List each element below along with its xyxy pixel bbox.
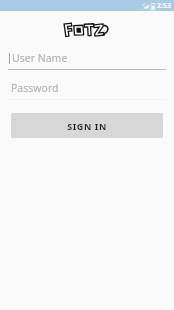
button[interactable]: SIGN IN xyxy=(11,113,163,138)
staticText: User Name xyxy=(12,51,68,65)
button[interactable]: Password xyxy=(8,81,166,100)
staticText: Password xyxy=(11,81,59,95)
staticText: SIGN IN xyxy=(67,120,107,132)
other: Fotz logo xyxy=(64,20,110,40)
button[interactable]: User Name xyxy=(8,51,166,70)
staticText: 2:53 xyxy=(157,1,171,11)
